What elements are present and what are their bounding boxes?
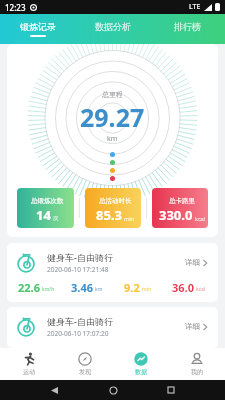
- staticText: 健身车-自由骑行: [47, 315, 113, 327]
- staticText: km/h: [42, 286, 55, 293]
- staticText: 2020-06-10 17:07:20: [47, 329, 109, 338]
- staticText: 330.0: [159, 206, 193, 224]
- staticText: 85.3: [96, 206, 122, 224]
- staticText: kcal: [196, 286, 206, 293]
- staticText: 次: [53, 215, 59, 222]
- staticText: 运动: [23, 368, 35, 376]
- staticText: 总卡路里: [169, 197, 195, 205]
- staticText: 详细: [185, 322, 200, 331]
- button[interactable]: 总卡路里: [152, 188, 208, 228]
- staticText: 总锻炼次数: [31, 197, 64, 205]
- staticText: 总活动时长: [99, 197, 132, 205]
- button[interactable]: 详细: [183, 320, 210, 333]
- staticText: 2020-06-10 17:21:48: [47, 265, 109, 274]
- button[interactable]: 数据分析: [75, 14, 150, 44]
- staticText: 发现: [79, 368, 91, 376]
- button[interactable]: 运动: [0, 348, 57, 380]
- staticText: 数据分析: [95, 21, 131, 32]
- button[interactable]: 健身车-自由骑行: [7, 243, 218, 302]
- button[interactable]: 锻炼记录: [0, 14, 75, 44]
- other: Home: [110, 387, 117, 394]
- button[interactable]: 发现: [57, 348, 113, 380]
- button[interactable]: 总锻炼次数: [17, 188, 74, 228]
- staticText: 排行榜: [174, 21, 201, 32]
- button[interactable]: 我的: [169, 348, 225, 380]
- staticText: min: [142, 286, 152, 293]
- staticText: kcal: [195, 215, 206, 222]
- staticText: 详细: [185, 258, 200, 267]
- button[interactable]: 数据: [113, 348, 169, 380]
- staticText: 健身车-自由骑行: [47, 251, 113, 263]
- staticText: 22.6: [18, 280, 40, 295]
- staticText: 总里程: [102, 90, 123, 99]
- staticText: 3.46: [71, 280, 93, 295]
- staticText: 29.27: [80, 100, 145, 134]
- button[interactable]: 总活动时长: [85, 188, 141, 228]
- staticText: 锻炼记录: [20, 21, 56, 32]
- staticText: 12:23: [5, 2, 26, 13]
- staticText: 14: [36, 206, 51, 224]
- button[interactable]: 排行榜: [150, 14, 225, 44]
- staticText: 数据: [135, 368, 147, 376]
- staticText: km: [107, 134, 118, 144]
- staticText: 9.2: [124, 280, 140, 295]
- staticText: km: [95, 286, 103, 293]
- staticText: 我的: [191, 368, 203, 376]
- button[interactable]: 健身车-自由骑行: [7, 307, 218, 348]
- staticText: LTE: [189, 2, 201, 12]
- other: Back: [51, 387, 58, 394]
- staticText: 36.0: [172, 280, 194, 295]
- staticText: min: [124, 215, 134, 222]
- button[interactable]: 详细: [183, 256, 210, 269]
- other: Recents: [168, 387, 174, 393]
